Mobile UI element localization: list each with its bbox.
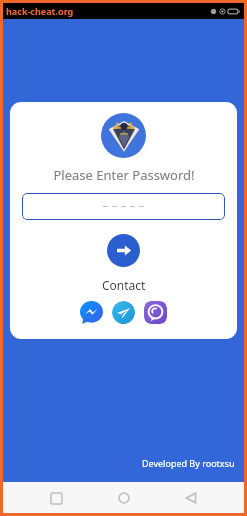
staticText: Contact	[102, 277, 146, 293]
button[interactable]: Submit password	[107, 234, 140, 267]
staticText: hack-cheat.org	[6, 5, 74, 17]
button[interactable]: Viber	[144, 301, 167, 324]
button[interactable]: Back	[176, 483, 206, 513]
staticText: Please Enter Password!	[53, 166, 195, 184]
staticText: Developed By rootxsu	[142, 457, 235, 469]
button[interactable]: Telegram	[112, 301, 135, 324]
button[interactable]: Messenger	[80, 301, 103, 324]
button[interactable]: Home	[109, 483, 139, 513]
button[interactable]	[22, 193, 225, 220]
button[interactable]: Recents	[41, 483, 71, 513]
